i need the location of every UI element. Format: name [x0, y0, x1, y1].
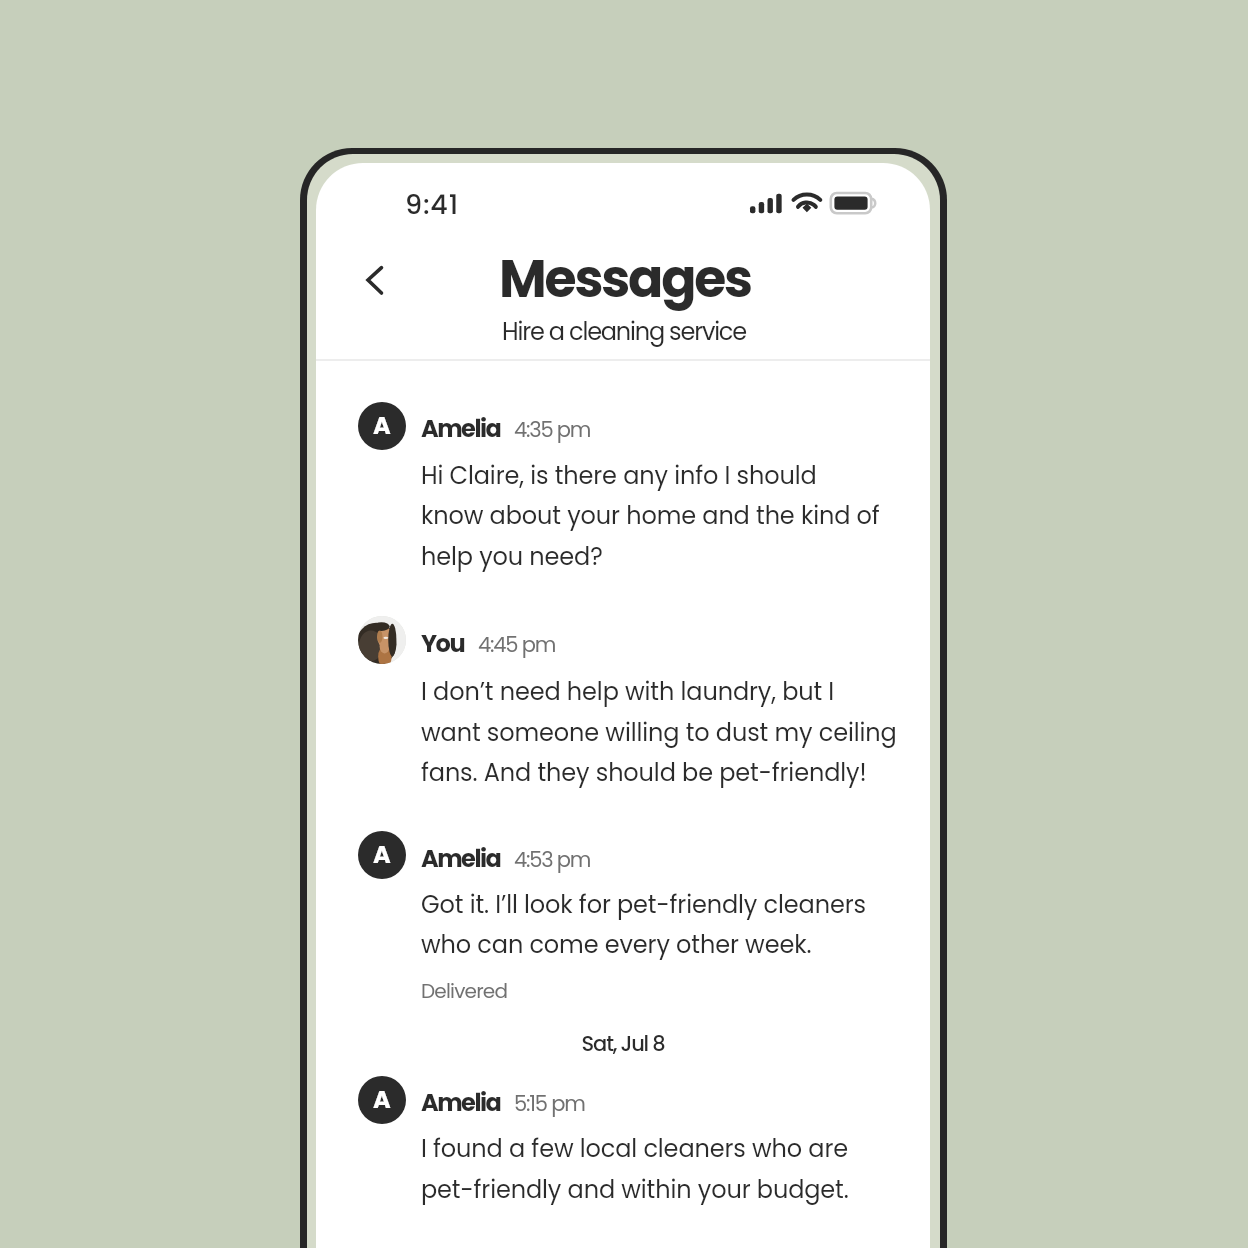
- staticText: A: [373, 838, 391, 872]
- button[interactable]: Amelia profile picture: [358, 402, 406, 450]
- staticText: 5:15 pm: [514, 1089, 585, 1118]
- staticText: Hire a cleaning service: [317, 315, 930, 349]
- staticText: 9:41: [405, 186, 459, 224]
- staticText: 4:53 pm: [514, 845, 591, 874]
- staticText: I found a few local cleaners who are: [421, 1132, 849, 1166]
- staticText: 4:35 pm: [514, 415, 591, 444]
- staticText: 4:45 pm: [478, 630, 556, 659]
- staticText: know about your home and the kind of: [421, 499, 880, 533]
- staticText: I don’t need help with laundry, but I: [421, 675, 835, 709]
- staticText: help you need?: [421, 540, 603, 574]
- staticText: pet-friendly and within your budget.: [421, 1173, 849, 1207]
- button[interactable]: Message from Amelia at 5:15 pm: [346, 1070, 920, 1204]
- button[interactable]: Message from Amelia at 4:35 pm: [346, 396, 920, 571]
- button[interactable]: Message from You at 4:45 pm: [346, 610, 920, 787]
- staticText: who can come every other week.: [421, 928, 812, 962]
- staticText: You: [421, 627, 465, 661]
- staticText: Hi Claire, is there any info I should: [421, 459, 817, 493]
- button[interactable]: Back: [340, 251, 404, 315]
- staticText: Delivered: [421, 977, 508, 1005]
- button[interactable]: Message from Amelia at 4:53 pm: [346, 825, 920, 1004]
- staticText: Amelia: [421, 1086, 501, 1120]
- staticText: want someone willing to dust my ceiling: [421, 716, 897, 750]
- staticText: Amelia: [421, 842, 501, 876]
- staticText: fans. And they should be pet-friendly!: [421, 756, 867, 790]
- button[interactable]: Amelia profile picture: [358, 831, 406, 879]
- button[interactable]: Amelia profile picture: [358, 1076, 406, 1124]
- staticText: Got it. I’ll look for pet-friendly clean…: [421, 888, 866, 922]
- staticText: A: [373, 409, 391, 443]
- staticText: A: [373, 1083, 391, 1117]
- staticText: Messages: [318, 242, 930, 315]
- button[interactable]: You profile picture: [358, 616, 406, 664]
- staticText: Amelia: [421, 412, 501, 446]
- staticText: Sat, Jul 8: [316, 1029, 930, 1058]
